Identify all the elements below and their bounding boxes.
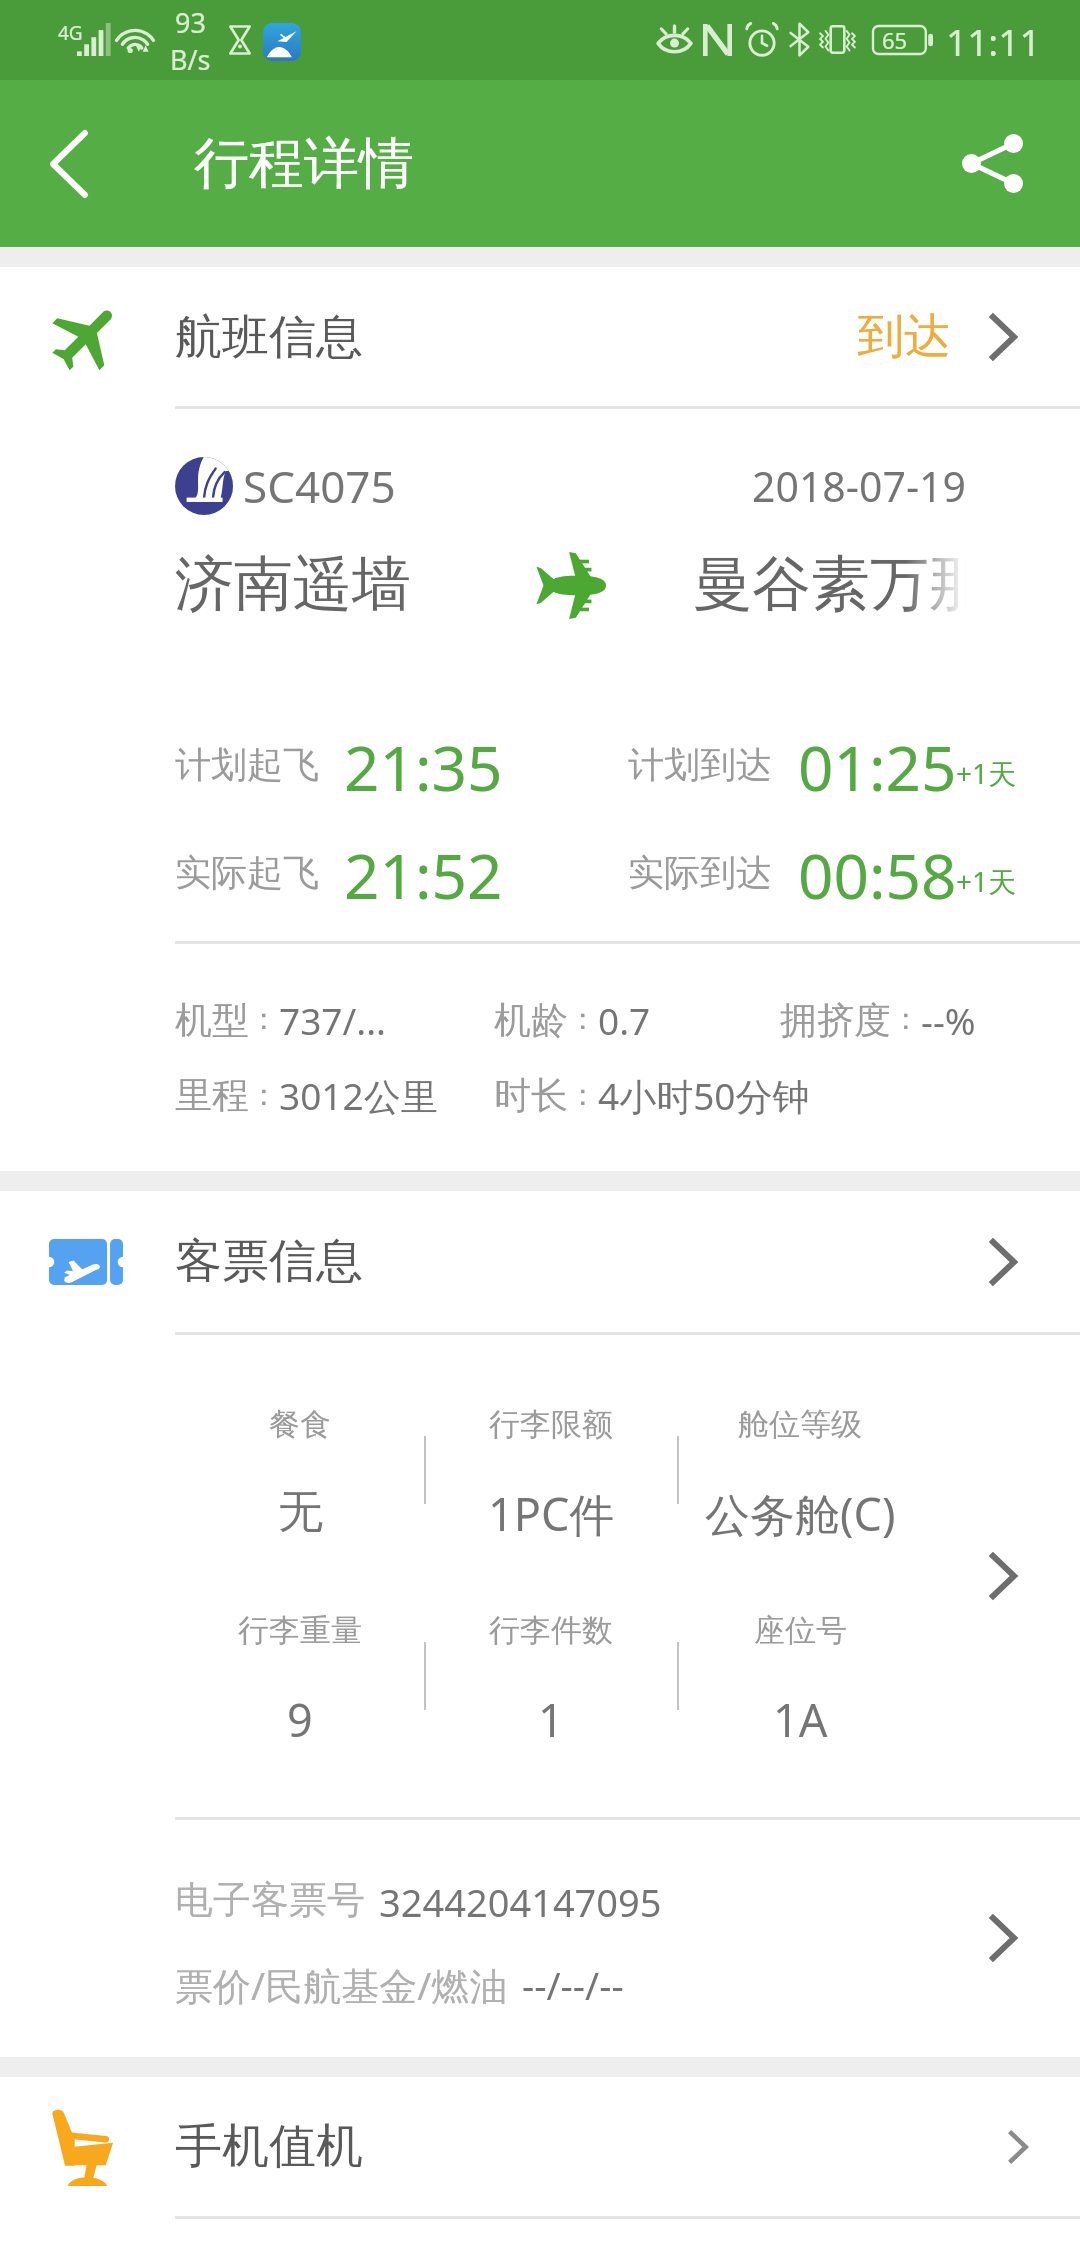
staticText: 行李重量 [238, 1611, 362, 1650]
staticText: ： [249, 1076, 279, 1114]
staticText: 实际起飞 [175, 850, 319, 895]
staticText: 计划起飞 [175, 742, 319, 787]
staticText: 93 [175, 4, 206, 41]
button[interactable]: Share [920, 80, 1080, 247]
button[interactable]: Back [0, 80, 150, 247]
staticText: 1 [538, 1689, 564, 1747]
staticText: 座位号 [754, 1611, 847, 1650]
staticText: +1天 [956, 754, 1017, 792]
staticText: 电子客票号 [175, 1876, 365, 1922]
staticText: 行李限额 [489, 1405, 613, 1444]
staticText: 计划到达 [628, 742, 772, 787]
staticText: 9 [287, 1689, 313, 1747]
staticText: 时长 [494, 1072, 568, 1119]
staticText: 1A [773, 1689, 828, 1747]
staticText: 公务舱(C) [705, 1483, 896, 1541]
staticText: ： [568, 1076, 598, 1114]
staticText: 65 [882, 25, 908, 53]
staticText: 手机值机 [175, 2117, 363, 2176]
staticText: 01:25 [798, 725, 957, 797]
staticText: 到达 [857, 307, 951, 366]
button[interactable]: 手机值机 [0, 2077, 1080, 2216]
staticText: 737/... [279, 995, 387, 1045]
staticText: 11:11 [946, 16, 1041, 66]
staticText: 3244204147095 [379, 1876, 662, 1922]
staticText: 机型 [175, 997, 249, 1044]
staticText: 4G [58, 20, 83, 46]
staticText: 机龄 [494, 997, 568, 1044]
staticText: ： [568, 1000, 598, 1038]
staticText: 2018-07-19 [752, 458, 967, 514]
staticText: SC4075 [243, 456, 396, 514]
button[interactable]: 餐食 [0, 1335, 1080, 1817]
staticText: 无 [278, 1484, 323, 1541]
staticText: 21:35 [344, 725, 503, 797]
staticText: 舱位等级 [738, 1405, 862, 1444]
staticText: 实际到达 [628, 850, 772, 895]
staticText: 拥挤度 [780, 997, 891, 1044]
staticText: +1天 [956, 862, 1017, 900]
staticText: --% [921, 995, 976, 1045]
staticText: 4小时50分钟 [598, 1070, 810, 1121]
staticText: 行李件数 [489, 1611, 613, 1650]
staticText: 餐食 [269, 1405, 331, 1444]
staticText: 1PC件 [488, 1483, 615, 1541]
staticText: 00:58 [798, 833, 957, 905]
staticText: 济南遥墙 [175, 547, 411, 621]
staticText: --/--/-- [522, 1959, 624, 2005]
staticText: B/s [170, 41, 211, 78]
staticText: ： [891, 1000, 921, 1038]
button[interactable]: 客票信息 [0, 1191, 1080, 1332]
staticText: 航班信息 [175, 308, 363, 367]
button[interactable]: 电子客票号 [0, 1820, 1080, 2057]
staticText: 票价/民航基金/燃油 [175, 1959, 508, 2005]
button[interactable]: 航班信息 [0, 267, 1080, 406]
staticText: 21:52 [344, 833, 503, 905]
staticText: 0.7 [598, 995, 651, 1045]
staticText: 行程详情 [194, 129, 414, 198]
staticText: 客票信息 [175, 1232, 363, 1291]
staticText: 里程 [175, 1072, 249, 1119]
staticText: ： [249, 1000, 279, 1038]
staticText: 曼谷素万那普 [693, 547, 967, 621]
staticText: 3012公里 [279, 1070, 438, 1121]
